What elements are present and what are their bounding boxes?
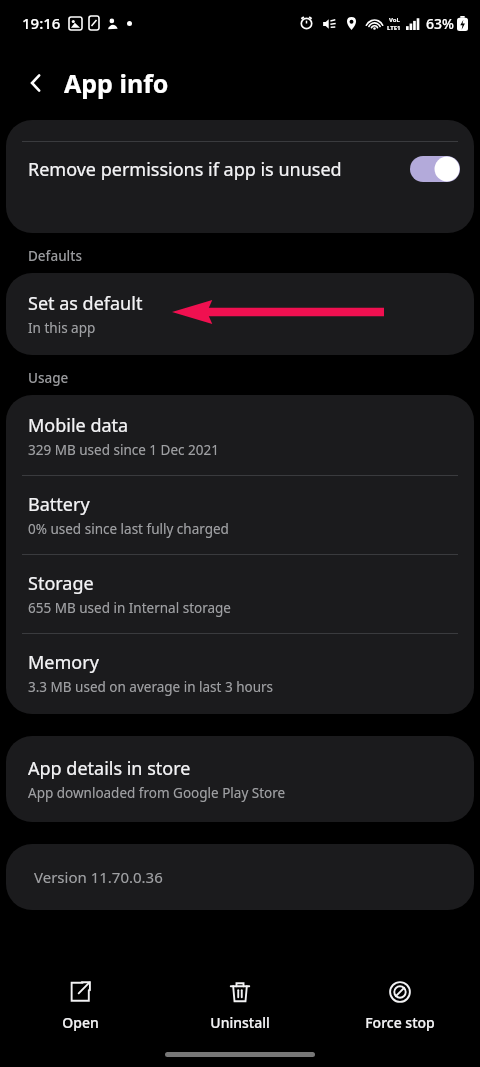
staticText: Memory xyxy=(28,650,99,675)
staticText: In this app xyxy=(28,319,96,337)
staticText: Force stop xyxy=(365,1013,435,1032)
staticText: Remove permissions if app is unused xyxy=(28,157,342,182)
button[interactable]: Open xyxy=(0,973,160,1038)
button[interactable]: Force stop xyxy=(320,973,480,1038)
button[interactable]: Mobile data xyxy=(6,395,474,475)
staticText: Storage xyxy=(28,571,94,596)
button[interactable]: Battery xyxy=(6,476,474,554)
button[interactable]: Remove permissions if app is unused xyxy=(6,142,474,182)
staticText: 3.3 MB used on average in last 3 hours xyxy=(28,678,274,696)
button[interactable]: Memory xyxy=(6,634,474,714)
staticText: 329 MB used since 1 Dec 2021 xyxy=(28,441,219,459)
staticText: Open xyxy=(62,1013,99,1032)
staticText: Version 11.70.0.36 xyxy=(34,867,163,887)
staticText: Mobile data xyxy=(28,413,129,438)
button[interactable]: Remove permissions toggle xyxy=(410,156,460,182)
staticText: LTE1 xyxy=(387,24,401,32)
staticText: Battery xyxy=(28,492,90,517)
button[interactable]: Set as default xyxy=(6,273,474,355)
button[interactable]: Back xyxy=(16,63,56,103)
staticText: Uninstall xyxy=(210,1013,270,1032)
staticText: App details in store xyxy=(28,756,191,781)
staticText: Defaults xyxy=(28,247,82,265)
staticText: Set as default xyxy=(28,291,143,316)
staticText: 0% used since last fully charged xyxy=(28,520,229,538)
button[interactable]: App details in store xyxy=(6,736,474,822)
staticText: 655 MB used in Internal storage xyxy=(28,599,231,617)
button[interactable]: Storage xyxy=(6,555,474,633)
staticText: VoL xyxy=(389,16,400,24)
staticText: 63% xyxy=(426,14,454,33)
staticText: App info xyxy=(64,66,169,100)
staticText: Usage xyxy=(28,369,69,387)
staticText: 19:16 xyxy=(22,13,61,33)
button[interactable]: Uninstall xyxy=(160,973,320,1038)
staticText: App downloaded from Google Play Store xyxy=(28,784,286,802)
